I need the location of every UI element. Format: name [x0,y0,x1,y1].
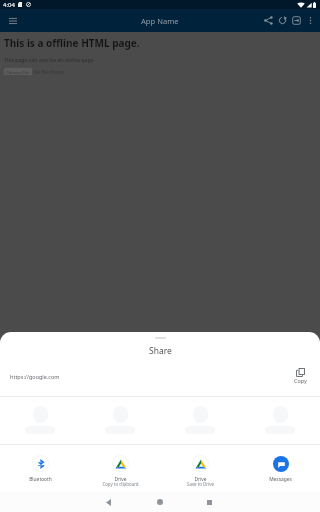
button[interactable]: Choose File [4,68,32,75]
staticText: Share [149,345,172,357]
button[interactable]: Save page [289,12,303,29]
button[interactable]: Menu [5,13,21,29]
button[interactable]: Drive [80,455,160,489]
staticText: https://google.com [10,373,60,380]
button[interactable]: Messages [240,455,320,483]
staticText: Messages [269,476,292,483]
staticText: Copy [294,377,307,384]
button[interactable]: Share [261,12,275,29]
button[interactable]: Bluetooth [0,455,80,483]
button[interactable]: Recents [200,493,218,511]
button[interactable]: Home [151,493,169,511]
staticText: Drive [114,476,127,483]
staticText: Drive [194,476,207,483]
staticText: No file chosen [34,69,65,75]
staticText: This page can also be an online page [4,56,94,63]
staticText: Bluetooth [29,476,52,483]
staticText: This is a offline HTML page. [4,36,140,50]
staticText: App Name [141,16,179,26]
button[interactable]: Drive [160,455,240,489]
button[interactable]: Refresh [275,12,289,29]
button[interactable]: Back [99,493,117,511]
button[interactable]: More options [303,12,317,29]
staticText: Copy to clipboard [102,481,139,487]
staticText: Save to Drive [187,481,214,487]
button[interactable]: Copy [288,368,312,384]
staticText: Choose File [6,69,30,75]
staticText: 4:04 [3,1,15,9]
